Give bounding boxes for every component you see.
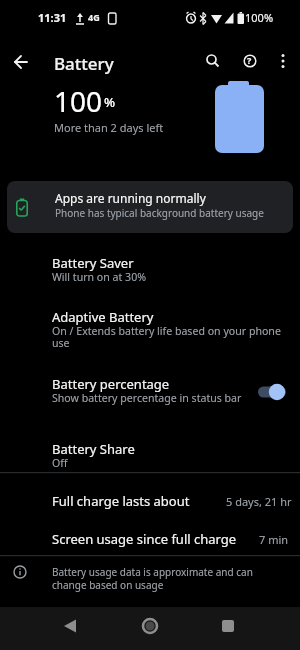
- staticText: Phone has typical background battery usa…: [55, 206, 264, 220]
- staticText: 4G: [88, 11, 100, 23]
- button[interactable]: [132, 609, 168, 645]
- staticText: Battery percentage: [52, 375, 170, 393]
- button[interactable]: Battery Share: [0, 436, 300, 480]
- staticText: change based on usage: [52, 578, 164, 592]
- staticText: Adaptive Battery: [52, 308, 154, 326]
- button[interactable]: [271, 47, 297, 75]
- staticText: Battery usage data is approximate and ca…: [52, 565, 253, 579]
- button[interactable]: [198, 47, 226, 75]
- staticText: Screen usage since full charge: [52, 530, 237, 548]
- staticText: Full charge lasts about: [52, 492, 190, 510]
- staticText: More than 2 days left: [54, 120, 164, 135]
- staticText: On / Extends battery life based on your …: [52, 324, 281, 338]
- staticText: Show battery percentage in status bar: [52, 391, 242, 405]
- button[interactable]: [254, 380, 290, 404]
- staticText: Battery: [54, 52, 114, 75]
- button[interactable]: Adaptive Battery: [0, 304, 300, 358]
- staticText: Battery Saver: [52, 254, 134, 272]
- staticText: Will turn on at 30%: [52, 270, 147, 284]
- button[interactable]: Battery percentage: [0, 371, 300, 415]
- button[interactable]: [210, 609, 246, 645]
- button[interactable]: Screen usage since full charge: [0, 521, 300, 559]
- staticText: 7 min: [259, 532, 289, 547]
- staticText: Battery Share: [52, 440, 135, 458]
- staticText: ?: [247, 54, 252, 66]
- staticText: 5 days, 21 hr: [226, 494, 292, 509]
- button[interactable]: Battery Saver: [0, 250, 300, 296]
- button[interactable]: [6, 47, 36, 77]
- staticText: 11:31: [38, 10, 67, 25]
- staticText: use: [52, 336, 70, 350]
- button[interactable]: [236, 47, 264, 75]
- staticText: Apps are running normally: [55, 190, 206, 206]
- staticText: %: [104, 93, 116, 111]
- staticText: Off: [52, 456, 68, 470]
- staticText: 100%: [245, 10, 274, 25]
- staticText: 100: [54, 82, 103, 120]
- button[interactable]: [52, 609, 88, 645]
- button[interactable]: Full charge lasts about: [0, 483, 300, 521]
- button[interactable]: Apps are running normally: [7, 181, 293, 233]
